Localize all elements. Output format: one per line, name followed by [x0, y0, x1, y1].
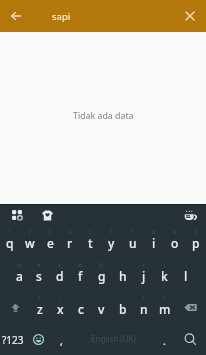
staticText: j — [142, 268, 146, 284]
staticText: ! — [143, 294, 145, 301]
staticText: 3 — [48, 228, 52, 235]
staticText: q — [6, 235, 14, 251]
button[interactable]: 0 — [185, 225, 206, 258]
staticText: u — [129, 235, 137, 251]
button[interactable]: : — [91, 291, 112, 324]
staticText: z — [37, 301, 43, 317]
staticText: p — [192, 235, 200, 251]
staticText: h — [119, 268, 127, 284]
staticText: English (UK) — [91, 333, 136, 344]
button[interactable]: # — [29, 258, 49, 291]
staticText: b — [119, 301, 127, 317]
button[interactable]: Sticker — [0, 205, 33, 225]
staticText: d — [56, 268, 64, 284]
button[interactable]: 8 — [143, 225, 164, 258]
staticText: @ — [17, 261, 22, 268]
staticText: e — [47, 235, 54, 251]
staticText: : — [101, 294, 103, 301]
staticText: g — [98, 268, 106, 284]
staticText: o — [171, 235, 179, 251]
staticText: m — [159, 301, 171, 317]
staticText: 9 — [173, 228, 177, 235]
staticText: k — [161, 268, 168, 284]
staticText: , — [60, 333, 63, 348]
button[interactable]: Emoji — [25, 324, 51, 355]
button[interactable]: ! — [133, 291, 154, 324]
staticText: % — [78, 261, 83, 268]
staticText: sapi — [52, 10, 174, 23]
button[interactable]: Themes — [33, 205, 61, 225]
button[interactable]: Clear — [174, 0, 206, 32]
button[interactable]: 2 — [20, 225, 40, 258]
staticText: & — [99, 261, 104, 268]
button[interactable]: ( — [154, 258, 175, 291]
staticText: * — [38, 294, 42, 301]
button[interactable]: , — [51, 324, 72, 355]
staticText: w — [25, 235, 35, 251]
button[interactable]: ? — [154, 291, 175, 324]
staticText: - — [122, 261, 124, 268]
staticText: $ — [58, 261, 62, 268]
staticText: 1 — [8, 228, 12, 235]
button[interactable]: " — [50, 291, 70, 324]
staticText: t — [88, 235, 93, 251]
staticText: r — [67, 235, 73, 251]
staticText: ? — [163, 294, 166, 301]
staticText: i — [152, 235, 156, 251]
button[interactable]: Search — [175, 324, 206, 355]
staticText: 7 — [131, 228, 135, 235]
button[interactable]: * — [30, 291, 50, 324]
button[interactable]: Back — [0, 0, 32, 32]
button[interactable]: - — [112, 258, 133, 291]
staticText: a — [16, 268, 23, 284]
staticText: ?123 — [2, 333, 24, 347]
button[interactable]: $ — [49, 258, 70, 291]
staticText: ) — [185, 261, 187, 268]
staticText: v — [98, 301, 105, 317]
button[interactable]: & — [91, 258, 112, 291]
staticText: 8 — [152, 228, 156, 235]
staticText: l — [184, 268, 188, 284]
staticText: 0 — [194, 228, 198, 235]
staticText: Tidak ada data — [73, 110, 134, 122]
button[interactable]: % — [70, 258, 91, 291]
button[interactable]: 7 — [122, 225, 143, 258]
staticText: + — [142, 261, 146, 268]
staticText: c — [78, 301, 84, 317]
button[interactable]: 4 — [60, 225, 80, 258]
button[interactable]: 1 — [0, 225, 20, 258]
staticText: " — [59, 294, 62, 301]
button[interactable]: @ — [9, 258, 29, 291]
button[interactable]: 6 — [101, 225, 122, 258]
button[interactable]: English (UK) — [72, 324, 154, 355]
staticText: ( — [164, 261, 166, 268]
staticText: # — [37, 261, 41, 268]
staticText: . — [163, 333, 166, 348]
button[interactable]: ) — [175, 258, 196, 291]
button[interactable]: ' — [70, 291, 91, 324]
staticText: ; — [122, 294, 124, 301]
staticText: y — [108, 235, 115, 251]
button[interactable]: 9 — [164, 225, 185, 258]
staticText: s — [36, 268, 42, 284]
button[interactable]: Coffee — [174, 205, 206, 225]
button[interactable]: ?123 — [0, 324, 25, 355]
button[interactable]: Shift — [0, 291, 30, 324]
staticText: ' — [80, 294, 82, 301]
button[interactable]: ; — [112, 291, 133, 324]
button[interactable]: . — [154, 324, 175, 355]
staticText: 6 — [110, 228, 114, 235]
staticText: f — [78, 268, 83, 284]
staticText: n — [140, 301, 148, 317]
staticText: x — [57, 301, 64, 317]
staticText: 4 — [68, 228, 72, 235]
staticText: 2 — [28, 228, 32, 235]
button[interactable]: + — [133, 258, 154, 291]
button[interactable]: Backspace — [175, 291, 206, 324]
button[interactable]: 3 — [40, 225, 60, 258]
staticText: 5 — [89, 228, 93, 235]
button[interactable]: 5 — [80, 225, 101, 258]
